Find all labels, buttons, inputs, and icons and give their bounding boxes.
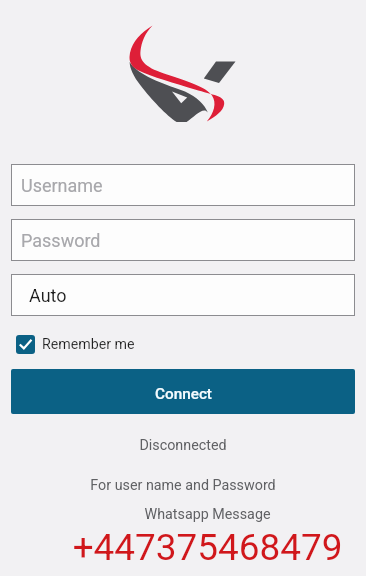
staticText: +447375468479 bbox=[49, 526, 366, 569]
button[interactable]: Auto bbox=[11, 274, 355, 316]
other: App logo bbox=[0, 0, 366, 155]
staticText: Connect bbox=[155, 385, 212, 403]
staticText: Auto bbox=[29, 285, 67, 306]
staticText: For user name and Password bbox=[0, 477, 366, 494]
button[interactable]: Password bbox=[11, 219, 355, 261]
staticText: Password bbox=[21, 230, 101, 251]
staticText: Remember me bbox=[42, 336, 135, 353]
staticText: Username bbox=[21, 175, 103, 196]
button[interactable]: Username bbox=[11, 164, 355, 206]
button[interactable]: Connect bbox=[11, 369, 355, 414]
staticText: Whatsapp Message bbox=[49, 506, 366, 523]
staticText: Disconnected bbox=[0, 437, 366, 454]
button[interactable]: Remember me bbox=[16, 331, 135, 358]
